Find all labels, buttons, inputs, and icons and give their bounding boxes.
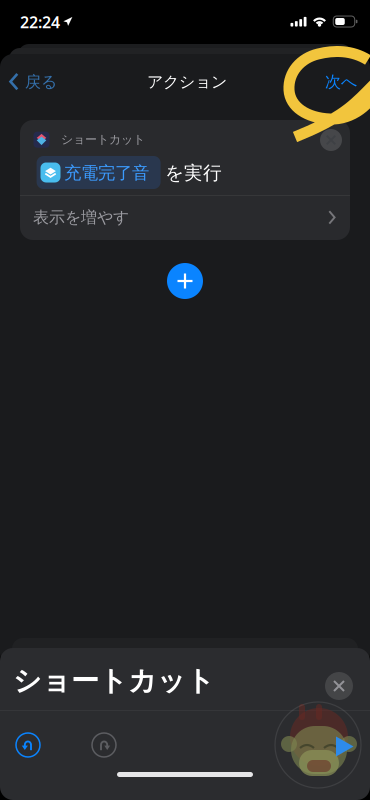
button[interactable]: やり直す <box>76 721 132 769</box>
staticText: ショートカット <box>13 664 215 698</box>
staticText: 戻る <box>25 72 57 92</box>
staticText: 充電完了音 <box>64 162 149 184</box>
staticText: アクション <box>147 72 227 92</box>
button[interactable]: 次へ <box>300 60 357 104</box>
staticText: 表示を増やす <box>33 208 129 227</box>
button[interactable]: アクションを追加 <box>167 263 203 299</box>
button[interactable]: 閉じる <box>325 672 353 700</box>
staticText: 22:24 <box>20 11 60 33</box>
button[interactable]: アクションを削除 <box>320 129 342 151</box>
staticText: を実行 <box>165 161 222 184</box>
staticText: 次へ <box>325 72 357 92</box>
button[interactable]: 実行 <box>275 702 361 788</box>
button[interactable]: 戻る <box>2 60 74 104</box>
button[interactable]: 表示を増やす <box>20 195 350 240</box>
button[interactable]: 取り消す <box>0 721 56 769</box>
staticText: ショートカット <box>61 132 145 147</box>
